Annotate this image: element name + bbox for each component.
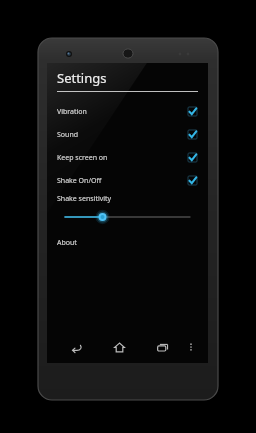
button[interactable]: Shake On/Off [47, 169, 208, 192]
button[interactable]: Recent apps [152, 337, 172, 357]
staticText: Keep screen on [57, 153, 108, 163]
button[interactable]: Home [109, 337, 129, 357]
button[interactable]: Keep screen on [47, 146, 208, 169]
button[interactable]: More options [183, 339, 199, 355]
button[interactable] [65, 210, 190, 224]
staticText: Shake sensitivity [57, 194, 112, 204]
button[interactable]: Sound [47, 123, 208, 146]
button[interactable]: About [47, 234, 208, 252]
staticText: Vibration [57, 107, 87, 117]
button[interactable]: Vibration [47, 100, 208, 123]
staticText: Sound [57, 130, 79, 140]
button[interactable]: Back [66, 337, 86, 357]
staticText: Shake On/Off [57, 176, 102, 186]
staticText: About [57, 238, 77, 248]
staticText: Settings [57, 69, 107, 87]
